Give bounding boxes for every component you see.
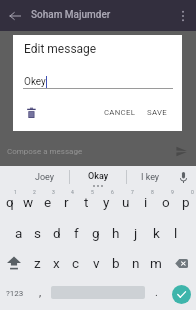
staticText: SAVE — [147, 108, 167, 117]
button[interactable]: b — [106, 248, 126, 278]
staticText: k — [153, 225, 160, 241]
staticText: h — [112, 225, 120, 241]
staticText: v — [93, 255, 100, 271]
button[interactable]: 9 — [156, 188, 176, 218]
button[interactable]: CANCEL — [100, 103, 140, 122]
button[interactable]: , — [29, 278, 51, 310]
button[interactable]: g — [86, 218, 106, 248]
staticText: r — [64, 194, 69, 210]
button[interactable]: Back — [8, 9, 22, 23]
staticText: s — [34, 225, 41, 241]
staticText: m — [150, 255, 162, 271]
button[interactable]: I key — [130, 166, 171, 188]
staticText: Compose a message — [7, 147, 83, 156]
button[interactable]: Delete — [27, 106, 36, 119]
button[interactable]: Okay — [72, 166, 124, 188]
button[interactable]: d — [47, 218, 66, 248]
staticText: 7 — [131, 189, 134, 195]
button[interactable]: n — [126, 248, 146, 278]
staticText: l — [174, 225, 178, 241]
staticText: a — [15, 225, 23, 241]
staticText: 2 — [33, 189, 36, 195]
button[interactable]: z — [28, 248, 47, 278]
staticText: 1 — [14, 189, 17, 195]
staticText: q — [6, 194, 14, 210]
staticText: f — [74, 225, 79, 241]
button[interactable]: Backspace — [166, 248, 196, 278]
button[interactable]: Voice input — [171, 166, 196, 188]
staticText: 6 — [111, 189, 114, 195]
staticText: t — [84, 194, 89, 210]
button[interactable]: Send — [176, 146, 187, 157]
button[interactable]: k — [146, 218, 166, 248]
button[interactable]: ?123 — [0, 278, 29, 310]
staticText: Joey — [35, 172, 55, 183]
button[interactable]: More options — [176, 9, 190, 23]
button[interactable]: 0 — [176, 188, 196, 218]
staticText: o — [162, 194, 170, 210]
button[interactable]: h — [106, 218, 126, 248]
staticText: y — [103, 194, 110, 210]
button[interactable]: Shift — [0, 248, 28, 278]
button[interactable]: 7 — [116, 188, 136, 218]
staticText: u — [122, 194, 130, 210]
staticText: p — [182, 194, 190, 210]
staticText: 0 — [191, 189, 194, 195]
staticText: 8 — [151, 189, 154, 195]
staticText: d — [53, 225, 61, 241]
staticText: 3 — [52, 189, 55, 195]
button[interactable]: c — [66, 248, 86, 278]
staticText: CANCEL — [104, 108, 136, 117]
button[interactable]: 3 — [38, 188, 57, 218]
button[interactable]: . — [146, 278, 166, 310]
button[interactable]: 5 — [76, 188, 96, 218]
staticText: 4 — [71, 189, 74, 195]
button[interactable]: 6 — [96, 188, 116, 218]
button[interactable]: 2 — [19, 188, 38, 218]
button[interactable]: a — [9, 218, 28, 248]
staticText: x — [53, 255, 60, 271]
button[interactable]: m — [146, 248, 166, 278]
staticText: Edit message — [24, 42, 97, 56]
button[interactable]: x — [47, 248, 66, 278]
staticText: , — [39, 286, 42, 299]
button[interactable]: l — [166, 218, 186, 248]
button[interactable]: j — [126, 218, 146, 248]
button[interactable]: SAVE — [143, 103, 171, 122]
staticText: Okey — [24, 76, 46, 88]
staticText: e — [44, 194, 52, 210]
button[interactable]: s — [28, 218, 47, 248]
staticText: c — [72, 255, 80, 271]
staticText: Okay — [88, 171, 109, 182]
button[interactable]: v — [86, 248, 106, 278]
staticText: I key — [141, 172, 160, 183]
button[interactable]: Joey — [25, 166, 65, 188]
staticText: Soham Majumder — [31, 9, 111, 21]
staticText: g — [92, 225, 100, 241]
button[interactable]: 8 — [136, 188, 156, 218]
button[interactable]: 1 — [0, 188, 19, 218]
staticText: . — [155, 286, 158, 299]
button[interactable]: Enter — [166, 278, 196, 310]
staticText: b — [112, 255, 120, 271]
staticText: z — [34, 255, 41, 271]
staticText: w — [23, 194, 34, 210]
staticText: ?123 — [6, 289, 24, 298]
button[interactable]: f — [66, 218, 86, 248]
staticText: 9 — [171, 189, 174, 195]
staticText: 5 — [91, 189, 94, 195]
staticText: i — [144, 194, 148, 210]
staticText: j — [134, 225, 138, 241]
staticText: n — [132, 255, 140, 271]
button[interactable]: 4 — [57, 188, 76, 218]
